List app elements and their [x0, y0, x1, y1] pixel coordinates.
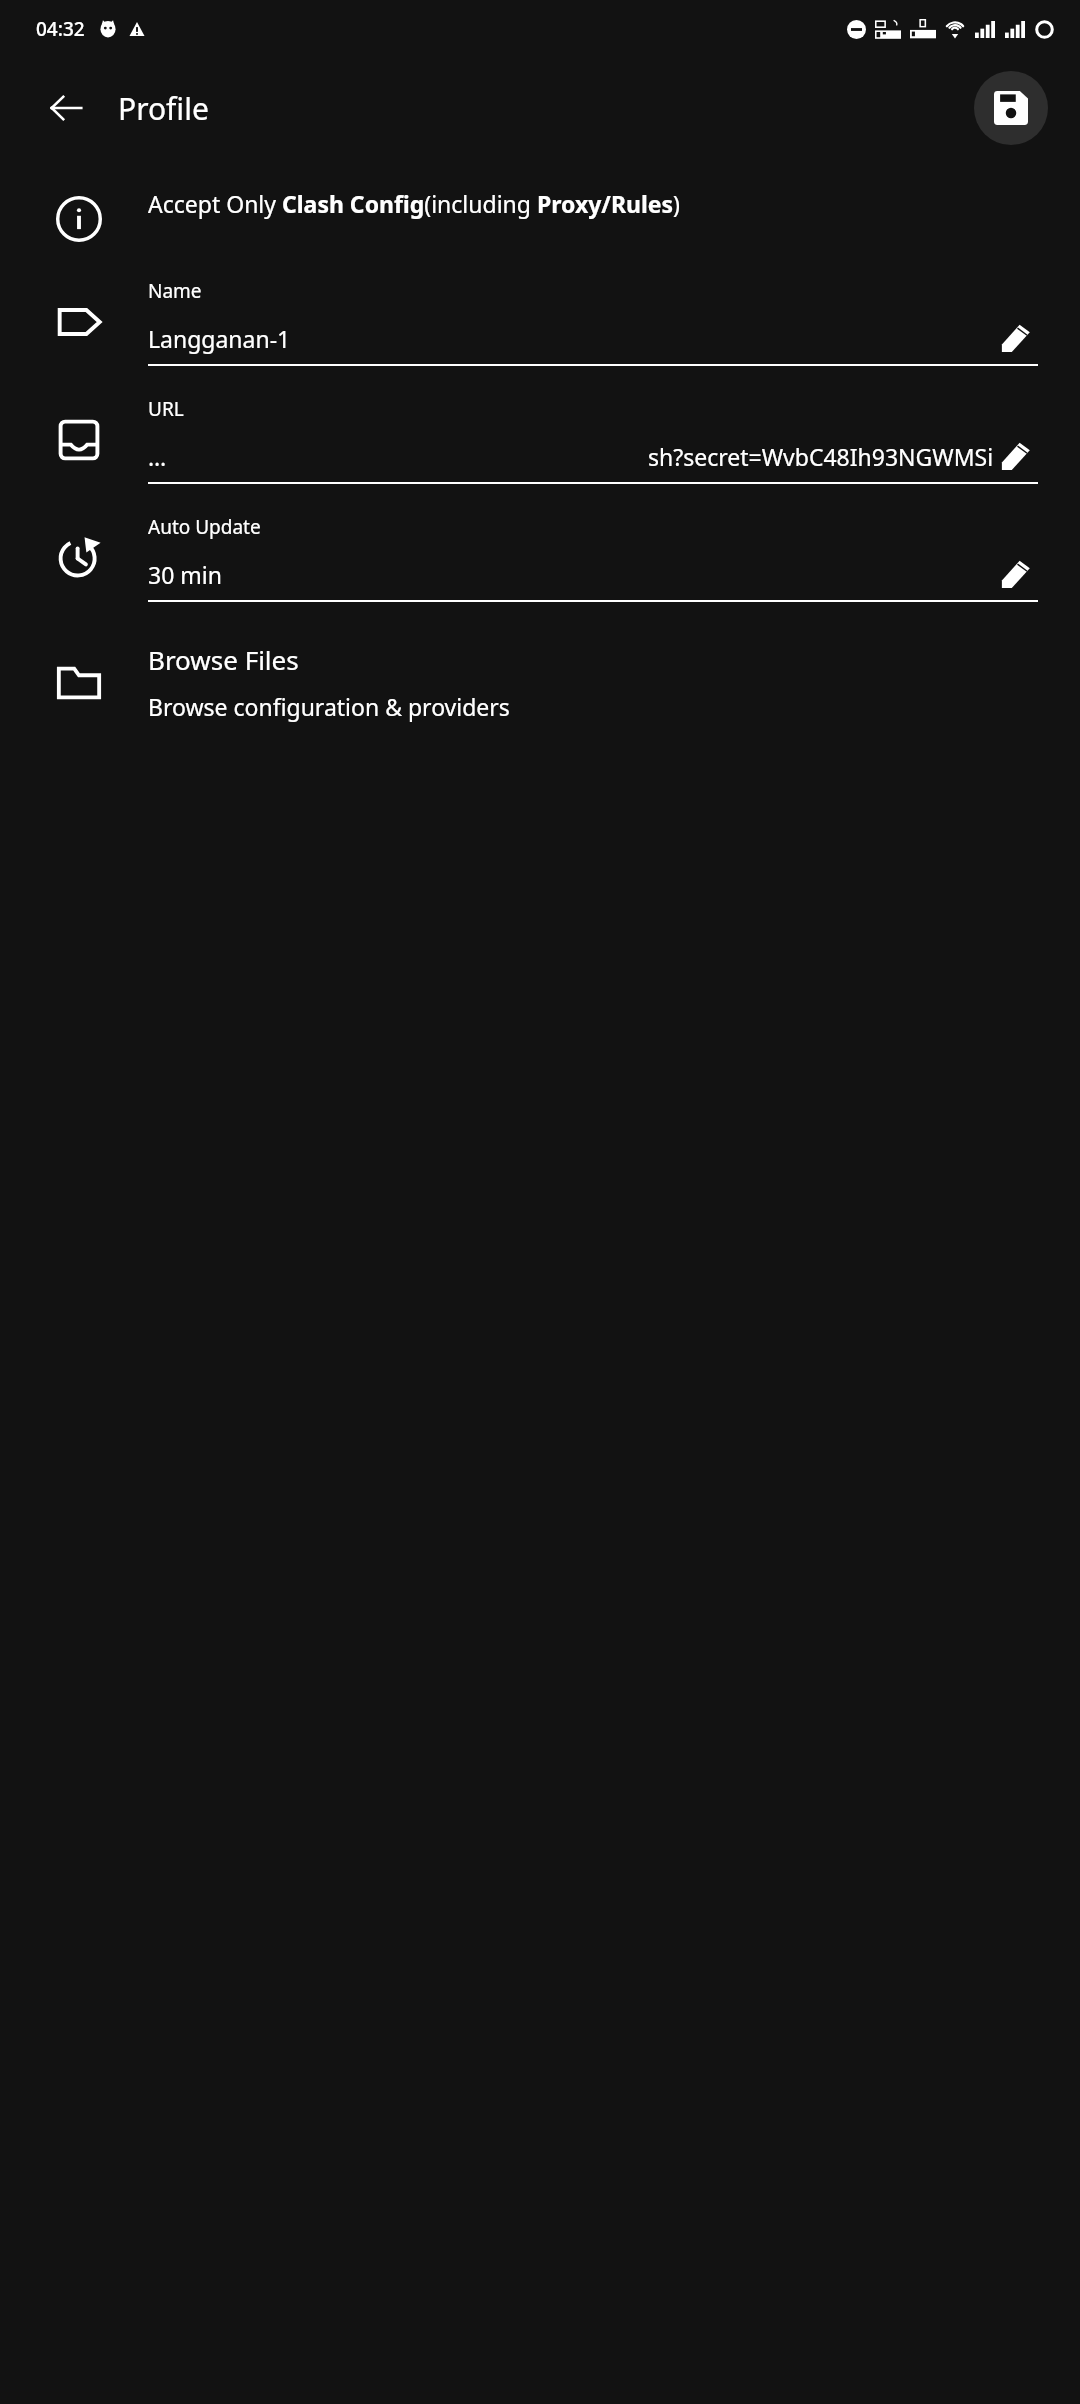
staticText: Name [148, 278, 202, 304]
staticText: 04:32 [36, 16, 85, 42]
staticText: Auto Update [148, 514, 261, 540]
staticText: Langganan-1 [148, 323, 994, 354]
button[interactable]: Accept Only Clash Config(including Proxy… [0, 180, 1080, 250]
button[interactable]: Edit Auto Update [994, 552, 1038, 596]
staticText: 30 min [148, 559, 994, 590]
button[interactable]: Back [40, 82, 92, 134]
button[interactable]: Browse Files [0, 636, 1080, 728]
button[interactable]: Auto Update [0, 514, 1080, 602]
staticText: Browse configuration & providers [148, 691, 510, 722]
staticText: … [148, 441, 167, 472]
button[interactable]: Save [974, 71, 1048, 145]
staticText: URL [148, 396, 184, 422]
staticText: sh?secret=WvbC48Ih93NGWMSi [648, 441, 994, 472]
button[interactable]: Name [0, 278, 1080, 366]
button[interactable]: URL [0, 396, 1080, 484]
staticText: Browse Files [148, 642, 299, 677]
button[interactable]: Edit Name [994, 316, 1038, 360]
staticText: Accept Only Clash Config(including Proxy… [148, 188, 680, 219]
staticText: Profile [118, 88, 209, 129]
button[interactable]: Edit URL [994, 434, 1038, 478]
